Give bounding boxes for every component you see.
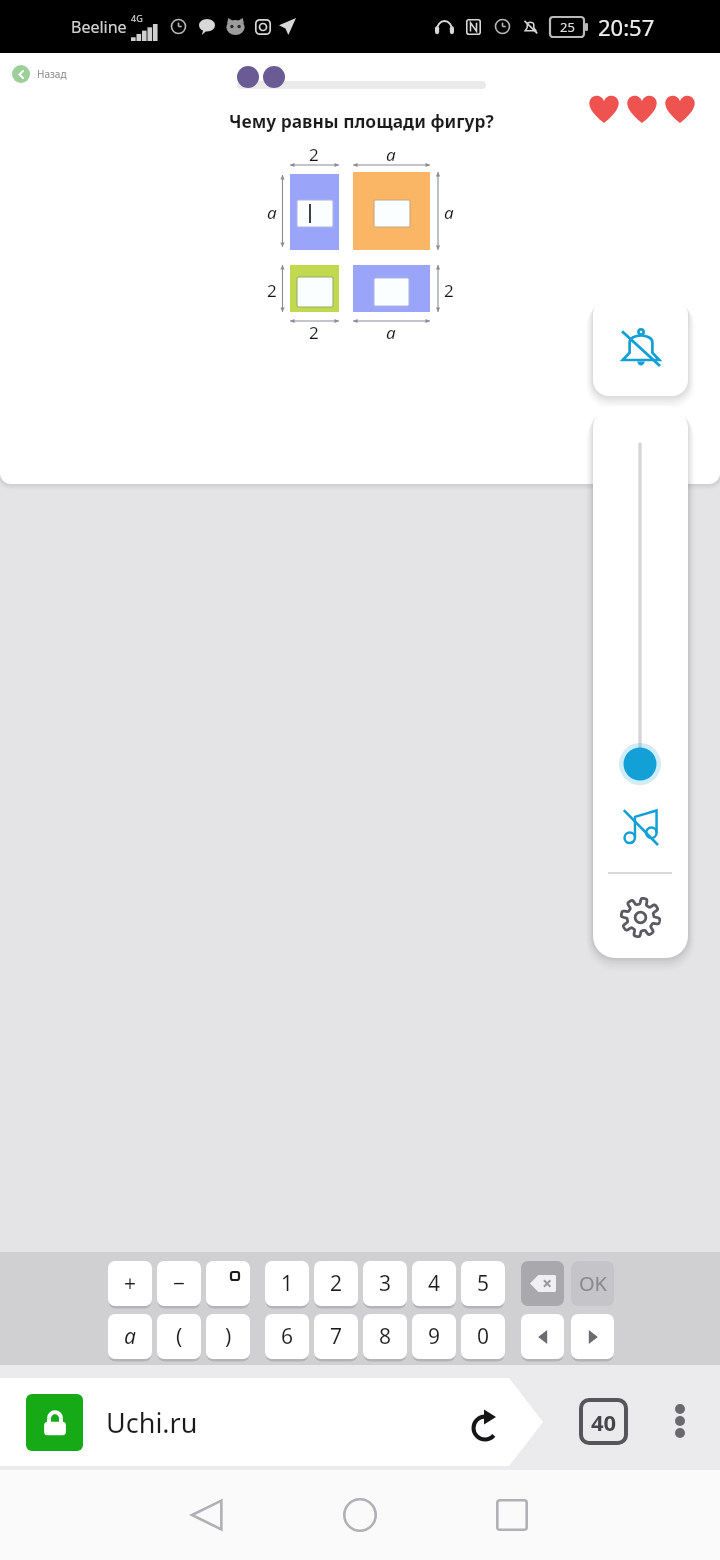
button[interactable]: 2 xyxy=(314,1261,358,1306)
button[interactable]: + xyxy=(108,1261,152,1306)
staticText: 4G xyxy=(131,12,143,24)
staticText: 2 xyxy=(330,1269,343,1298)
staticText: 25 xyxy=(560,18,575,36)
staticText: 2 xyxy=(309,143,319,166)
staticText: Чему равны площади фигур? xyxy=(229,109,494,133)
button[interactable]: 6 xyxy=(265,1314,309,1359)
staticText: OK xyxy=(579,1270,607,1297)
button[interactable]: 7 xyxy=(314,1314,358,1359)
staticText: − xyxy=(173,1269,186,1298)
staticText: a xyxy=(386,143,396,166)
staticText: Назад xyxy=(37,67,67,81)
staticText: 9 xyxy=(428,1322,441,1351)
staticText: ( xyxy=(176,1322,183,1351)
button[interactable]: Reload page xyxy=(464,1401,510,1447)
button[interactable]: 0 xyxy=(461,1314,505,1359)
button[interactable]: Mute music xyxy=(606,793,674,861)
staticText: 0 xyxy=(477,1322,490,1351)
staticText: a xyxy=(444,201,454,224)
staticText: a xyxy=(124,1322,136,1351)
staticText: 2 xyxy=(309,321,319,344)
staticText: 5 xyxy=(477,1269,490,1298)
button[interactable]: 4 xyxy=(412,1261,456,1306)
staticText: 7 xyxy=(330,1322,343,1351)
staticText: 2 xyxy=(267,279,277,302)
button[interactable]: Back xyxy=(166,1478,246,1552)
button[interactable]: 1 xyxy=(265,1261,309,1306)
button[interactable]: Home xyxy=(320,1478,400,1552)
staticText: Uchi.ru xyxy=(106,1404,198,1441)
button[interactable]: Right xyxy=(571,1314,614,1359)
button[interactable]: ) xyxy=(206,1314,250,1359)
staticText: 3 xyxy=(379,1269,392,1298)
button[interactable]: 5 xyxy=(461,1261,505,1306)
button[interactable]: Left xyxy=(521,1314,564,1359)
staticText: 40 xyxy=(591,1407,617,1437)
button[interactable]: 9 xyxy=(412,1314,456,1359)
staticText: 8 xyxy=(379,1322,392,1351)
button[interactable]: Назад xyxy=(6,59,75,89)
button[interactable] xyxy=(206,1261,250,1306)
button[interactable]: a xyxy=(108,1314,152,1359)
button[interactable]: 3 xyxy=(363,1261,407,1306)
button[interactable]: More options xyxy=(657,1395,703,1447)
staticText: 20:57 xyxy=(598,12,655,42)
button[interactable]: Backspace xyxy=(521,1261,564,1306)
staticText: ) xyxy=(225,1322,232,1351)
button[interactable]: − xyxy=(157,1261,201,1306)
button[interactable]: OK xyxy=(571,1261,614,1306)
button[interactable]: Tabs xyxy=(579,1398,628,1445)
button[interactable]: Mute notifications xyxy=(593,299,688,396)
staticText: 4 xyxy=(428,1269,441,1298)
button[interactable]: ( xyxy=(157,1314,201,1359)
staticText: + xyxy=(124,1269,137,1298)
button[interactable]: 8 xyxy=(363,1314,407,1359)
staticText: 6 xyxy=(281,1322,294,1351)
staticText: a xyxy=(267,201,277,224)
button[interactable]: Settings xyxy=(606,883,674,951)
staticText: a xyxy=(386,321,396,344)
staticText: 2 xyxy=(444,279,454,302)
staticText: Beeline xyxy=(71,16,127,38)
button[interactable]: Recent apps xyxy=(472,1478,552,1552)
button[interactable]: Secure connection xyxy=(26,1394,83,1451)
staticText: 1 xyxy=(281,1269,294,1298)
